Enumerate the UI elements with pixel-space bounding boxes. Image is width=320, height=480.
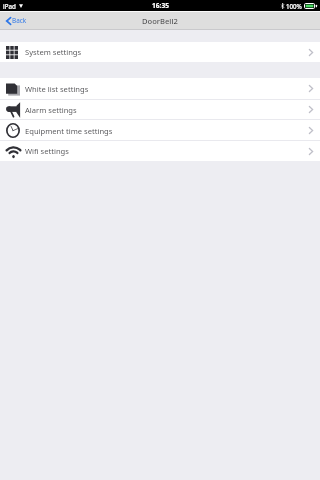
- staticText: Equipment time settings: [25, 126, 113, 136]
- button[interactable]: Wifi settings: [0, 141, 320, 161]
- staticText: Wifi settings: [25, 146, 69, 156]
- button[interactable]: Back: [6, 11, 320, 30]
- button[interactable]: System settings: [0, 42, 320, 62]
- staticText: 100%: [286, 2, 302, 10]
- button[interactable]: White list settings: [0, 78, 320, 99]
- staticText: 16:35: [152, 1, 169, 10]
- button[interactable]: Equipment time settings: [0, 120, 320, 141]
- staticText: White list settings: [25, 84, 89, 94]
- staticText: iPad: [3, 2, 16, 10]
- staticText: Back: [12, 16, 27, 25]
- button[interactable]: Alarm settings: [0, 99, 320, 120]
- staticText: DoorBell2: [142, 16, 178, 26]
- staticText: System settings: [25, 47, 82, 57]
- staticText: Alarm settings: [25, 105, 77, 115]
